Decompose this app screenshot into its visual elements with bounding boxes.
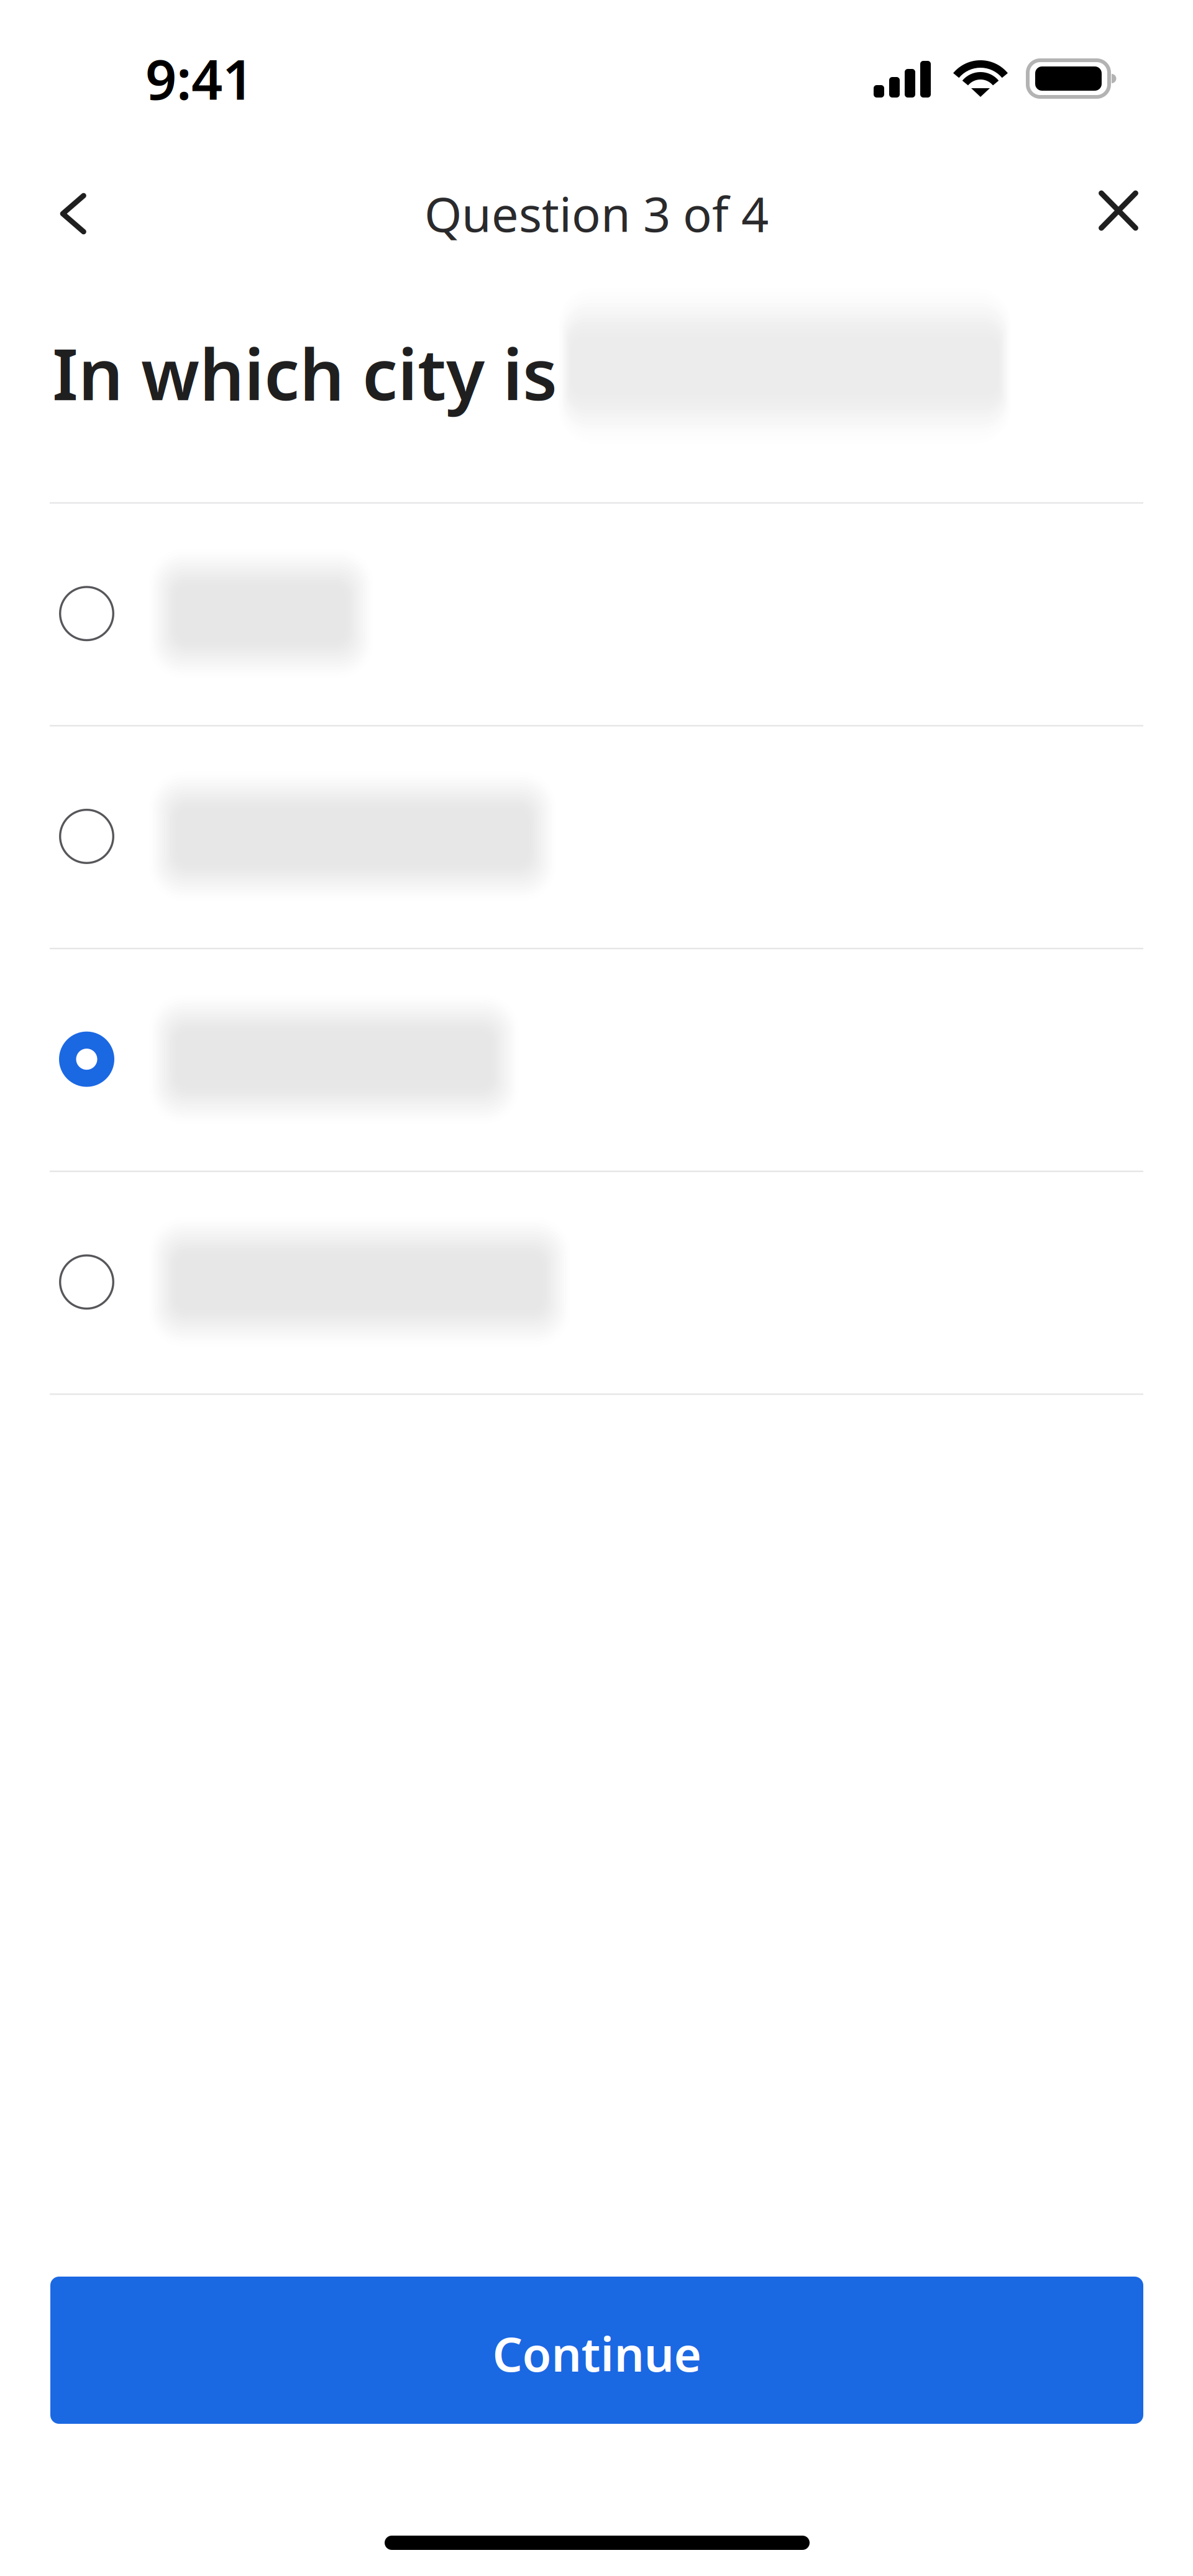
button[interactable]: Close bbox=[1071, 164, 1166, 257]
button[interactable]: Answer option 4 bbox=[0, 1171, 1193, 1393]
button[interactable]: Answer option 1 bbox=[0, 502, 1193, 725]
staticText: Question 3 of 4 bbox=[424, 181, 769, 245]
button[interactable]: Answer option 2 bbox=[0, 725, 1193, 948]
button[interactable]: Answer option 3 bbox=[0, 948, 1193, 1171]
staticText: In which city is bbox=[52, 326, 557, 420]
staticText: 9:41 bbox=[145, 42, 254, 115]
button[interactable]: Back bbox=[26, 167, 121, 260]
button[interactable]: Continue bbox=[50, 2277, 1143, 2424]
staticText: Continue bbox=[492, 2322, 701, 2385]
